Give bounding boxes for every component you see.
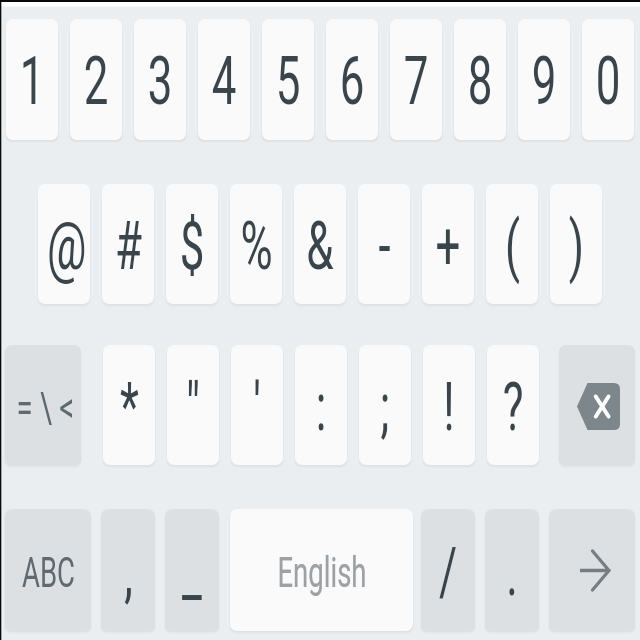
staticText: , xyxy=(124,534,133,611)
button[interactable]: 5 xyxy=(262,19,314,140)
button[interactable]: # xyxy=(102,184,154,304)
staticText: 5 xyxy=(275,43,301,120)
button[interactable]: $ xyxy=(166,184,218,304)
button[interactable]: , xyxy=(101,509,155,631)
staticText: ! xyxy=(443,369,455,446)
staticText: : xyxy=(316,369,326,446)
button[interactable]: Enter xyxy=(549,509,635,631)
button[interactable]: * xyxy=(103,345,155,465)
staticText: ' xyxy=(253,369,261,446)
button[interactable]: + xyxy=(422,184,474,304)
staticText: = \ < xyxy=(16,383,70,432)
button[interactable]: 7 xyxy=(390,19,442,140)
button[interactable]: / xyxy=(421,509,475,631)
button[interactable]: ! xyxy=(423,345,475,465)
staticText: 2 xyxy=(83,43,109,120)
button[interactable]: 9 xyxy=(518,19,570,140)
staticText: # xyxy=(115,208,142,285)
button[interactable]: 8 xyxy=(454,19,506,140)
staticText: 4 xyxy=(211,43,237,120)
button[interactable]: : xyxy=(295,345,347,465)
button[interactable]: 1 xyxy=(6,19,58,140)
staticText: ; xyxy=(380,369,390,446)
staticText: 9 xyxy=(531,43,557,120)
staticText: 7 xyxy=(403,43,429,120)
button[interactable]: ? xyxy=(487,345,539,465)
staticText: English xyxy=(277,547,367,597)
staticText: ? xyxy=(502,369,524,446)
staticText: ( xyxy=(505,208,520,285)
staticText: % xyxy=(240,208,273,285)
staticText: 6 xyxy=(339,43,365,120)
staticText: . xyxy=(506,534,518,611)
staticText: / xyxy=(439,534,457,611)
button[interactable]: 6 xyxy=(326,19,378,140)
staticText: " xyxy=(186,369,200,446)
staticText: & xyxy=(306,208,334,285)
button[interactable]: % xyxy=(230,184,282,304)
button[interactable]: & xyxy=(294,184,346,304)
staticText: 1 xyxy=(19,43,45,120)
button[interactable]: 0 xyxy=(582,19,634,140)
button[interactable]: Backspace xyxy=(559,345,635,465)
button[interactable]: ( xyxy=(486,184,538,304)
staticText: * xyxy=(120,369,139,446)
button[interactable]: 2 xyxy=(70,19,122,140)
button[interactable]: ) xyxy=(550,184,602,304)
staticText: - xyxy=(378,208,391,285)
button[interactable]: ; xyxy=(359,345,411,465)
button[interactable]: 4 xyxy=(198,19,250,140)
staticText: 0 xyxy=(595,43,621,120)
button[interactable]: " xyxy=(167,345,219,465)
button[interactable]: 3 xyxy=(134,19,186,140)
staticText: 3 xyxy=(147,43,173,120)
button[interactable]: _ xyxy=(165,509,219,631)
staticText: 8 xyxy=(467,43,493,120)
button[interactable]: English xyxy=(230,509,413,631)
button[interactable]: - xyxy=(358,184,410,304)
button[interactable]: . xyxy=(485,509,539,631)
button[interactable]: ABC xyxy=(5,509,91,631)
button[interactable]: @ xyxy=(38,184,90,304)
staticText: _ xyxy=(182,534,202,611)
button[interactable]: ' xyxy=(231,345,283,465)
staticText: @ xyxy=(47,208,81,285)
button[interactable]: = \ < xyxy=(5,345,81,465)
staticText: $ xyxy=(179,208,205,285)
staticText: + xyxy=(435,208,461,285)
staticText: ) xyxy=(569,208,584,285)
staticText: ABC xyxy=(22,547,75,597)
